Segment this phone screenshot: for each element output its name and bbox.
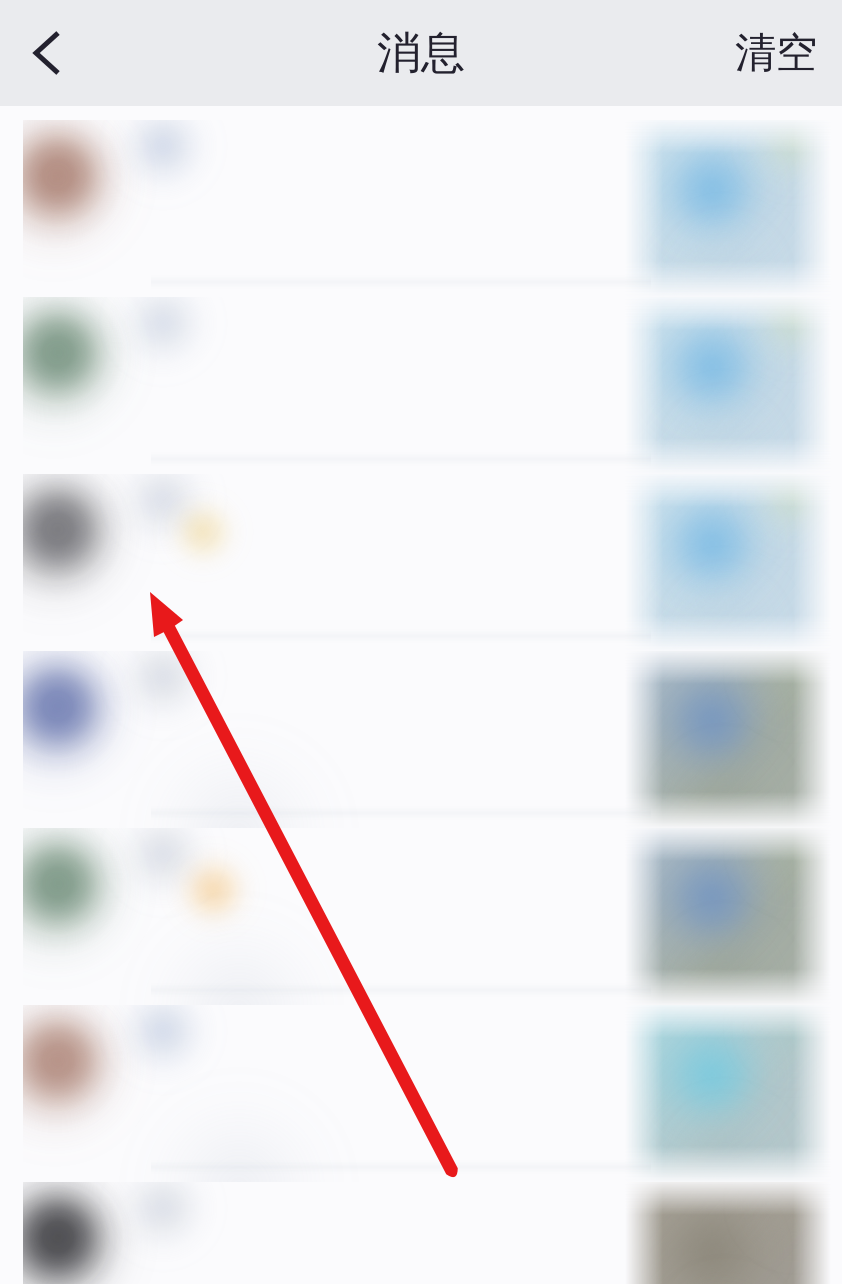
button[interactable] bbox=[23, 297, 833, 474]
button[interactable] bbox=[23, 120, 833, 297]
staticText: 消息 bbox=[377, 26, 465, 80]
button[interactable]: Back bbox=[0, 0, 94, 106]
button[interactable] bbox=[23, 651, 833, 828]
button[interactable]: 清空 bbox=[710, 0, 842, 106]
staticText: 清空 bbox=[735, 28, 817, 78]
button[interactable] bbox=[23, 1182, 833, 1284]
button[interactable] bbox=[23, 474, 833, 651]
button[interactable] bbox=[23, 828, 833, 1005]
button[interactable] bbox=[23, 1005, 833, 1182]
